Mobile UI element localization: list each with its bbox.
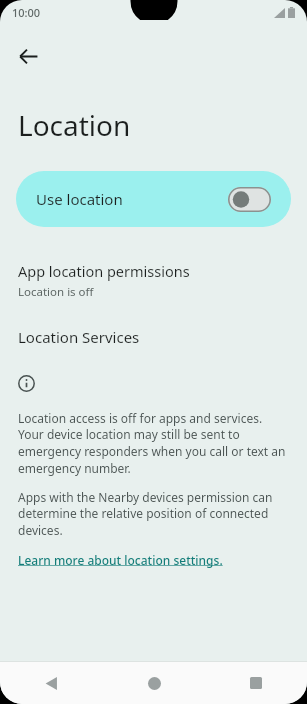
staticText: Location access is off for apps and serv… [18, 410, 289, 476]
staticText: Learn more about location settings. [18, 552, 223, 568]
button[interactable]: Home [103, 662, 205, 704]
button[interactable]: Back [0, 662, 103, 704]
button[interactable]: Recent apps [205, 662, 307, 704]
button[interactable]: Learn more about location settings. [18, 552, 223, 568]
staticText: Use location [36, 189, 228, 209]
staticText: 10:00 [12, 5, 41, 20]
staticText: Location Services [18, 327, 140, 347]
staticText: Apps with the Nearby devices permission … [18, 489, 289, 538]
staticText: Location is off [18, 284, 94, 300]
staticText: App location permissions [18, 261, 190, 281]
button[interactable]: App location permissions [0, 259, 307, 302]
button[interactable]: Use location [16, 171, 291, 227]
staticText: Location [18, 106, 131, 144]
button[interactable]: Back [8, 36, 48, 76]
